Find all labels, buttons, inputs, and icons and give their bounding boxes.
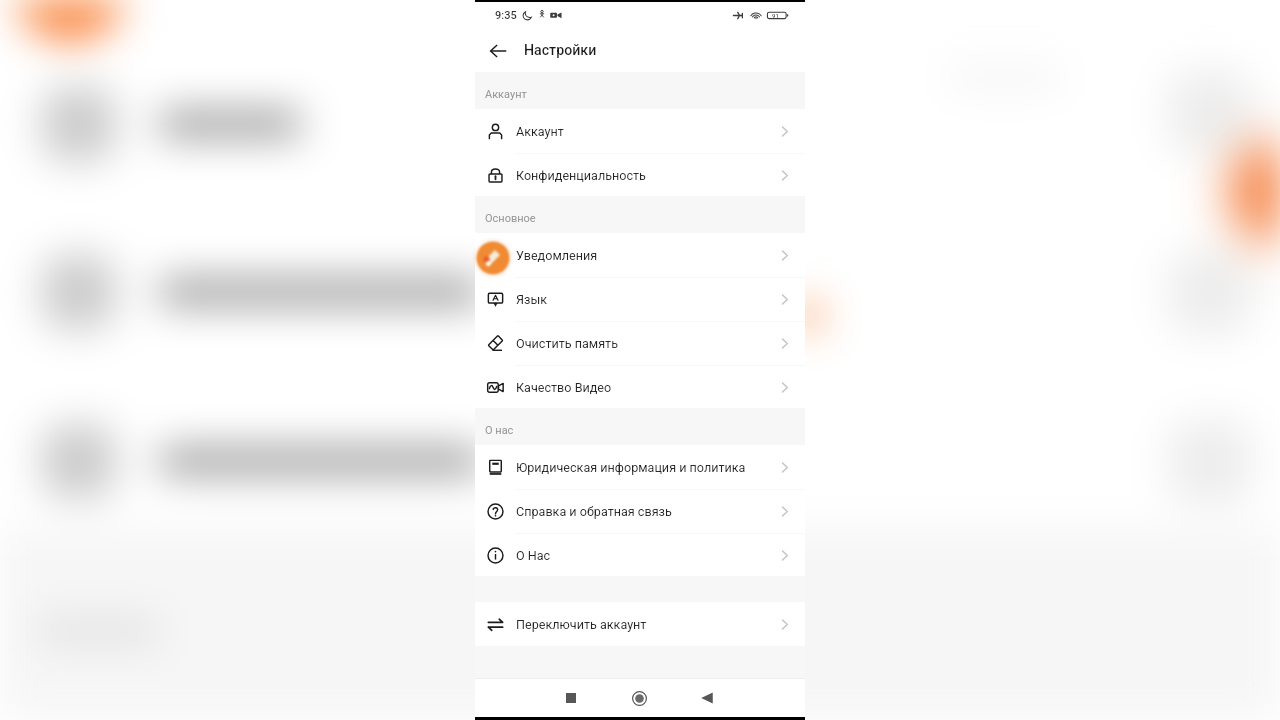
button[interactable]: Качество Видео bbox=[475, 365, 805, 409]
staticText: Аккаунт bbox=[485, 88, 527, 101]
staticText: Конфиденциальность bbox=[516, 168, 646, 183]
button[interactable]: Юридическая информация и политика bbox=[475, 445, 805, 489]
staticText: Справка и обратная связь bbox=[516, 504, 672, 519]
button[interactable]: Конфиденциальность bbox=[475, 153, 805, 197]
button[interactable]: Очистить память bbox=[475, 321, 805, 365]
staticText: О Нас bbox=[516, 548, 551, 563]
staticText: О нас bbox=[485, 424, 514, 437]
button[interactable]: Home bbox=[625, 684, 653, 712]
staticText: Язык bbox=[516, 292, 547, 307]
button[interactable]: Back bbox=[693, 684, 721, 712]
button[interactable]: Recent apps bbox=[557, 684, 585, 712]
staticText: Переключить аккаунт bbox=[516, 617, 647, 632]
staticText: 9:35 bbox=[495, 9, 517, 22]
button[interactable]: Переключить аккаунт bbox=[475, 602, 805, 646]
button[interactable]: Back bbox=[483, 36, 513, 66]
staticText: Юридическая информация и политика bbox=[516, 460, 746, 475]
staticText: Очистить память bbox=[516, 336, 618, 351]
button[interactable]: Аккаунт bbox=[475, 109, 805, 153]
staticText: Настройки bbox=[524, 42, 597, 59]
staticText: Уведомления bbox=[516, 248, 598, 263]
button[interactable]: Справка и обратная связь bbox=[475, 489, 805, 533]
staticText: 91 bbox=[772, 12, 779, 19]
button[interactable]: Язык bbox=[475, 277, 805, 321]
button[interactable]: Уведомления bbox=[475, 233, 805, 277]
button[interactable]: О Нас bbox=[475, 533, 805, 577]
staticText: Качество Видео bbox=[516, 380, 612, 395]
staticText: Основное bbox=[485, 212, 536, 225]
staticText: Аккаунт bbox=[516, 124, 564, 139]
